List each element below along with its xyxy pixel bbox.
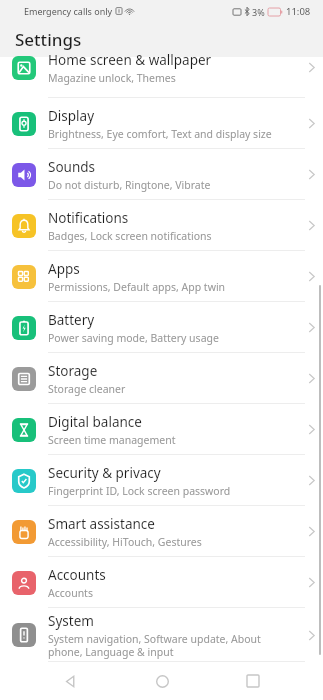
staticText: System [48,612,94,630]
staticText: Accounts [48,586,93,600]
button[interactable]: System [0,608,323,662]
staticText: Smart assistance [48,515,155,533]
button[interactable]: Back [48,662,92,700]
staticText: Emergency calls only [24,5,113,17]
staticText: 11:08 [286,5,311,18]
button[interactable]: Storage [0,353,323,404]
button[interactable]: Digital balance [0,404,323,455]
staticText: Digital balance [48,413,142,431]
staticText: 3% [252,6,265,18]
button[interactable]: Display [0,98,323,149]
button[interactable]: Home [140,662,184,700]
staticText: Badges, Lock screen notifications [48,229,212,243]
staticText: Power saving mode, Battery usage [48,331,219,345]
staticText: Screen time management [48,433,176,447]
button[interactable]: Apps [0,251,323,302]
staticText: Storage cleaner [48,382,126,396]
staticText: Fingerprint ID, Lock screen password [48,484,231,498]
button[interactable]: Security & privacy [0,455,323,506]
button[interactable]: Smart assistance [0,506,323,557]
staticText: Notifications [48,209,129,227]
staticText: Display [48,107,95,125]
staticText: Home screen & wallpaper [48,51,212,69]
button[interactable]: Battery [0,302,323,353]
staticText: System navigation, Software update, Abou… [48,632,261,659]
staticText: Permissions, Default apps, App twin [48,280,226,294]
button[interactable]: Accounts [0,557,323,608]
button[interactable]: Home screen & wallpaper [0,57,323,98]
button[interactable]: Notifications [0,200,323,251]
staticText: Security & privacy [48,464,161,482]
staticText: Accounts [48,566,106,584]
staticText: Battery [48,311,95,329]
button[interactable]: Sounds [0,149,323,200]
staticText: Sounds [48,158,96,176]
staticText: Do not disturb, Ringtone, Vibrate [48,178,211,192]
staticText: Accessibility, HiTouch, Gestures [48,535,202,549]
staticText: Storage [48,362,98,380]
staticText: Brightness, Eye comfort, Text and displa… [48,127,272,141]
button[interactable]: Recent apps [231,662,275,700]
staticText: Magazine unlock, Themes [48,71,176,85]
staticText: Apps [48,260,80,278]
staticText: Settings [15,28,82,51]
